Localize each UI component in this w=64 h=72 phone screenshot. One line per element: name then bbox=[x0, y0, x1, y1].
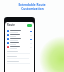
button[interactable]: Toggle bbox=[5, 29, 34, 33]
button[interactable]: Toggle bbox=[5, 41, 34, 45]
button[interactable] bbox=[7, 51, 32, 54]
button[interactable]: Toggle bbox=[5, 33, 34, 37]
staticText: Extendable Route bbox=[18, 3, 46, 7]
button[interactable] bbox=[7, 61, 32, 64]
staticText: Customization bbox=[21, 7, 44, 11]
staticText: Route bbox=[7, 23, 15, 27]
button[interactable]: Toggle bbox=[5, 45, 34, 49]
button[interactable]: Active bbox=[27, 24, 32, 27]
button[interactable] bbox=[7, 56, 32, 59]
button[interactable]: Toggle bbox=[5, 37, 34, 41]
